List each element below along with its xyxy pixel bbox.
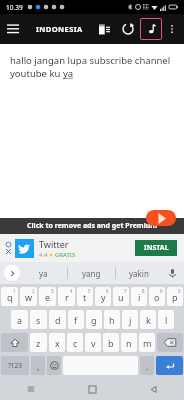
button[interactable]: t (77, 287, 93, 306)
button[interactable]: More options (162, 19, 182, 39)
staticText: g (91, 314, 97, 326)
staticText: v (91, 337, 96, 349)
staticText: 1 (13, 288, 16, 294)
staticText: 10.39 (6, 3, 23, 12)
staticText: GRATIS (55, 251, 76, 259)
button[interactable]: f (68, 310, 84, 329)
staticText: j (129, 314, 132, 326)
staticText: i (138, 291, 141, 303)
button[interactable]: yang (67, 262, 115, 284)
button[interactable]: x (49, 333, 65, 352)
staticText: . (146, 360, 149, 372)
staticText: 7 (124, 288, 127, 294)
button[interactable]: ya (20, 262, 67, 284)
button[interactable]: Voice input (163, 264, 181, 282)
staticText: 9 (160, 288, 163, 294)
button[interactable]: Home (62, 378, 123, 400)
staticText: 6 (106, 288, 109, 294)
staticText: m (143, 337, 152, 349)
staticText: INSTAL (144, 243, 169, 253)
staticText: , (37, 360, 40, 372)
staticText: hallo jangan lupa subscribe channel (10, 54, 171, 67)
button[interactable]: INSTAL (135, 240, 177, 256)
staticText: Twitter (39, 238, 69, 250)
button[interactable]: z (30, 333, 47, 352)
button[interactable]: b (103, 333, 119, 352)
staticText: Click to remove ads and get Premium (27, 221, 158, 231)
button[interactable]: Shift (1, 333, 28, 352)
button[interactable]: Clear list (92, 17, 116, 41)
staticText: f (74, 314, 78, 326)
button[interactable]: v (85, 333, 101, 352)
button[interactable]: More suggestions (4, 265, 20, 281)
button[interactable]: j (122, 310, 138, 329)
button[interactable]: Recent apps (0, 378, 62, 400)
other: Shift (1, 333, 28, 352)
staticText: 2 (32, 288, 35, 294)
button[interactable]: Open navigation drawer (0, 16, 26, 42)
button[interactable]: c (67, 333, 83, 352)
button[interactable]: k (140, 310, 156, 329)
button[interactable]: q (1, 287, 18, 306)
staticText: 4.4 (39, 251, 48, 259)
button[interactable]: u (113, 287, 129, 306)
button[interactable]: Back (123, 378, 184, 400)
button[interactable]: ?123 (1, 356, 29, 375)
button[interactable]: Play (146, 210, 176, 226)
staticText: ?123 (8, 361, 22, 370)
staticText: q (7, 291, 13, 303)
staticText: 3 (51, 288, 54, 294)
staticText: k (146, 314, 151, 326)
button[interactable]: Refresh (116, 17, 140, 41)
button[interactable]: Backspace (157, 333, 183, 352)
button[interactable]: Click to remove ads and get Premium (0, 218, 184, 234)
button[interactable]: l (158, 310, 174, 329)
staticText: r (65, 291, 69, 303)
button[interactable]: , (31, 356, 45, 375)
staticText: ya (63, 67, 74, 80)
staticText: p (172, 291, 178, 303)
staticText: youtube ku (10, 67, 63, 80)
staticText: 8 (142, 288, 145, 294)
staticText: x (55, 337, 60, 349)
staticText: ya (39, 268, 48, 279)
button[interactable]: w (20, 287, 37, 306)
button[interactable]: s (30, 310, 47, 329)
button[interactable]: i (131, 287, 147, 306)
button[interactable]: Music notes (141, 19, 161, 39)
button[interactable]: e (39, 287, 56, 306)
button[interactable]: Enter (156, 356, 183, 375)
button[interactable]: o (149, 287, 165, 306)
button[interactable]: Twitter (0, 234, 184, 262)
staticText: h (109, 314, 115, 326)
staticText: INDONESIA (36, 24, 83, 34)
other: Emoji (47, 356, 61, 375)
staticText: l (165, 314, 168, 326)
button[interactable]: m (139, 333, 155, 352)
button[interactable]: r (58, 287, 75, 306)
button[interactable]: Emoji (47, 356, 61, 375)
button[interactable]: . (140, 356, 154, 375)
staticText: 4 (70, 288, 73, 294)
staticText: d (55, 314, 61, 326)
button[interactable]: p (167, 287, 183, 306)
button[interactable]: g (86, 310, 102, 329)
staticText: w (25, 291, 33, 303)
staticText: z (36, 337, 41, 349)
button[interactable]: yakin (115, 262, 163, 284)
button[interactable]: y (95, 287, 111, 306)
staticText: 0 (178, 288, 181, 294)
staticText: o (154, 291, 160, 303)
staticText: y (101, 291, 106, 303)
staticText: t (83, 291, 87, 303)
staticText: b (108, 337, 114, 349)
button[interactable]: d (49, 310, 66, 329)
button[interactable]: a (11, 310, 28, 329)
button[interactable]: n (121, 333, 137, 352)
staticText: s (36, 314, 41, 326)
button[interactable]: h (104, 310, 120, 329)
staticText: c (73, 337, 78, 349)
staticText: e (45, 291, 51, 303)
